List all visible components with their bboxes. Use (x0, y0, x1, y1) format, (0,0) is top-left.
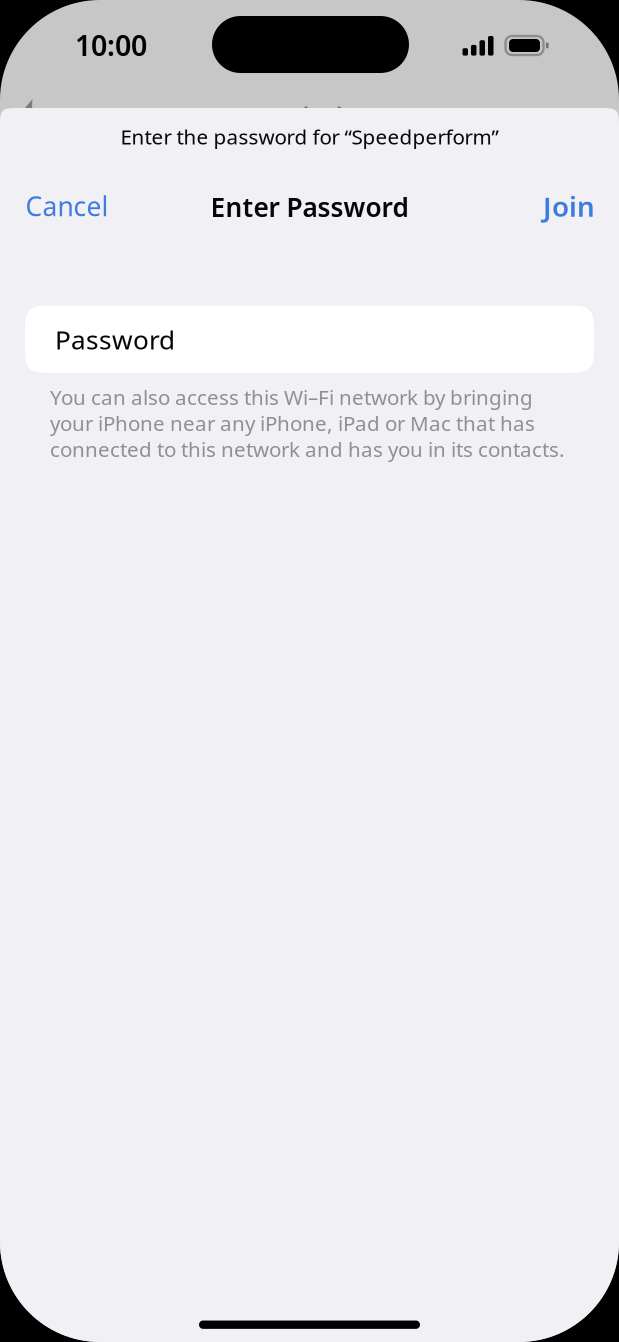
staticText: 10:00 (75, 26, 147, 64)
staticText: You can also access this Wi–Fi network b… (50, 384, 565, 462)
button[interactable]: Cancel (0, 179, 134, 233)
button[interactable]: Password (25, 305, 594, 373)
staticText: Password (55, 322, 175, 357)
staticText: Join (543, 188, 595, 224)
button[interactable]: Join (514, 179, 619, 233)
staticText: Enter the password for “Speedperform” (120, 123, 498, 150)
staticText: Cancel (25, 188, 108, 224)
staticText: Enter Password (210, 189, 408, 224)
